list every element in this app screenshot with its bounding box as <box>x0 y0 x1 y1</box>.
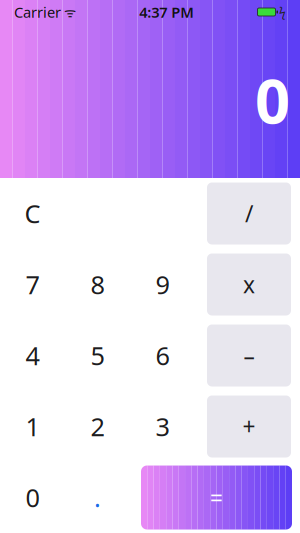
button[interactable]: 6 <box>130 320 195 391</box>
button[interactable]: 2 <box>65 391 130 462</box>
staticText: . <box>94 481 101 514</box>
button[interactable]: 1 <box>0 391 65 462</box>
staticText: ϟ <box>279 4 286 20</box>
button[interactable]: 5 <box>65 320 130 391</box>
staticText: 9 <box>155 268 169 301</box>
button[interactable]: 3 <box>130 391 195 462</box>
staticText: 6 <box>155 339 169 372</box>
staticText: ᯤ <box>61 3 76 21</box>
staticText: 5 <box>90 339 104 372</box>
button[interactable]: 9 <box>130 249 195 320</box>
staticText: 7 <box>25 268 39 301</box>
button[interactable]: 0 <box>0 462 65 533</box>
staticText: 0 <box>255 59 290 141</box>
staticText: 4 <box>25 339 39 372</box>
staticText: C <box>24 197 40 230</box>
staticText: 8 <box>90 268 104 301</box>
staticText: Carrier <box>14 2 61 22</box>
staticText: 0 <box>25 481 39 514</box>
staticText: / <box>245 198 253 228</box>
button[interactable]: . <box>65 462 130 533</box>
staticText: x <box>243 269 255 299</box>
button[interactable]: 7 <box>0 249 65 320</box>
button[interactable]: – <box>207 324 291 386</box>
button[interactable]: / <box>207 182 291 244</box>
staticText: – <box>243 340 254 370</box>
staticText: 2 <box>90 410 104 443</box>
staticText: 1 <box>25 410 39 443</box>
button[interactable]: C <box>0 178 65 249</box>
button[interactable]: + <box>207 395 291 457</box>
button[interactable]: 4 <box>0 320 65 391</box>
button[interactable]: = <box>141 465 292 529</box>
button[interactable]: 8 <box>65 249 130 320</box>
staticText: + <box>242 411 255 441</box>
button[interactable]: x <box>207 253 291 315</box>
staticText: 3 <box>155 410 169 443</box>
staticText: = <box>210 482 223 512</box>
staticText: 4:37 PM <box>139 2 194 22</box>
